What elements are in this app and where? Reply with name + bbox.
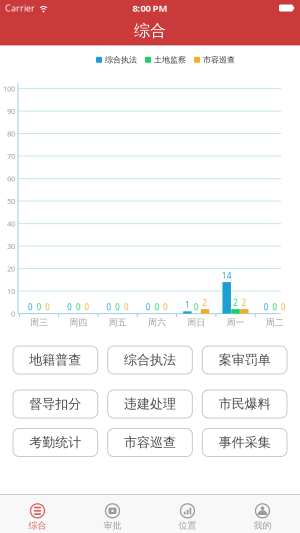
staticText: 0 — [85, 302, 90, 313]
staticText: 土地监察 — [154, 55, 186, 65]
button[interactable]: 地籍普查 — [13, 346, 98, 374]
staticText: 90 — [7, 106, 15, 116]
button[interactable]: 违建处理 — [108, 390, 192, 418]
staticText: 1 — [185, 299, 190, 310]
button[interactable]: 考勤统计 — [13, 428, 98, 456]
button[interactable]: 市民爆料 — [202, 390, 287, 418]
staticText: 0 — [76, 302, 81, 313]
button[interactable]: 督导扣分 — [13, 390, 98, 418]
staticText: 周日 — [187, 317, 205, 328]
staticText: 周五 — [109, 317, 127, 328]
button[interactable]: 案审罚单 — [202, 346, 287, 374]
staticText: 40 — [7, 218, 15, 229]
staticText: 8:00 PM — [132, 1, 167, 14]
staticText: 60 — [7, 173, 15, 184]
staticText: 100 — [3, 83, 15, 94]
staticText: 市民爆料 — [219, 396, 271, 412]
staticText: 周三 — [30, 317, 48, 328]
staticText: 0 — [194, 302, 199, 313]
button[interactable]: 综合执法 — [108, 346, 192, 374]
staticText: 0 — [263, 302, 268, 313]
staticText: 0 — [281, 302, 286, 313]
staticText: 0 — [115, 302, 120, 313]
staticText: 0 — [154, 302, 159, 313]
staticText: 0 — [67, 302, 72, 313]
staticText: 0 — [28, 302, 33, 313]
staticText: 0 — [36, 302, 41, 313]
staticText: 周一 — [226, 317, 244, 328]
staticText: 2 — [202, 297, 207, 308]
staticText: 0 — [124, 302, 129, 313]
staticText: 督导扣分 — [29, 396, 81, 412]
button[interactable]: 我的 — [225, 496, 300, 531]
staticText: 考勤统计 — [29, 434, 81, 451]
staticText: 审批 — [103, 520, 121, 531]
staticText: 0 — [272, 302, 277, 313]
staticText: 20 — [7, 263, 15, 274]
staticText: 市容巡查 — [124, 434, 176, 451]
staticText: 综合执法 — [105, 55, 137, 65]
staticText: 2 — [242, 297, 247, 308]
staticText: Carrier — [5, 2, 35, 14]
staticText: 综合执法 — [124, 352, 176, 368]
staticText: 市容巡查 — [203, 55, 235, 65]
button[interactable]: 市容巡查 — [108, 428, 192, 456]
staticText: 10 — [7, 286, 15, 296]
staticText: 周二 — [266, 317, 284, 328]
staticText: 事件采集 — [219, 434, 271, 451]
staticText: 30 — [7, 241, 15, 251]
staticText: 0 — [45, 302, 50, 313]
button[interactable]: 审批 — [75, 496, 150, 531]
staticText: 0 — [106, 302, 111, 313]
button[interactable]: 位置 — [150, 496, 225, 531]
staticText: 0 — [11, 308, 15, 319]
staticText: 14 — [222, 270, 232, 281]
staticText: 80 — [7, 128, 15, 139]
staticText: 地籍普查 — [29, 352, 81, 368]
staticText: 违建处理 — [124, 396, 176, 412]
button[interactable]: 综合 — [0, 496, 75, 531]
staticText: 0 — [146, 302, 151, 313]
staticText: 位置 — [178, 520, 196, 531]
staticText: 综合 — [28, 520, 46, 531]
staticText: 0 — [163, 302, 168, 313]
staticText: 70 — [7, 151, 15, 161]
staticText: 案审罚单 — [219, 352, 271, 368]
staticText: 综合 — [134, 21, 166, 41]
staticText: 50 — [7, 196, 15, 206]
staticText: 我的 — [253, 520, 271, 531]
staticText: 2 — [233, 297, 238, 308]
button[interactable]: 事件采集 — [202, 428, 287, 456]
staticText: 周六 — [148, 317, 166, 328]
staticText: 周四 — [69, 317, 87, 328]
